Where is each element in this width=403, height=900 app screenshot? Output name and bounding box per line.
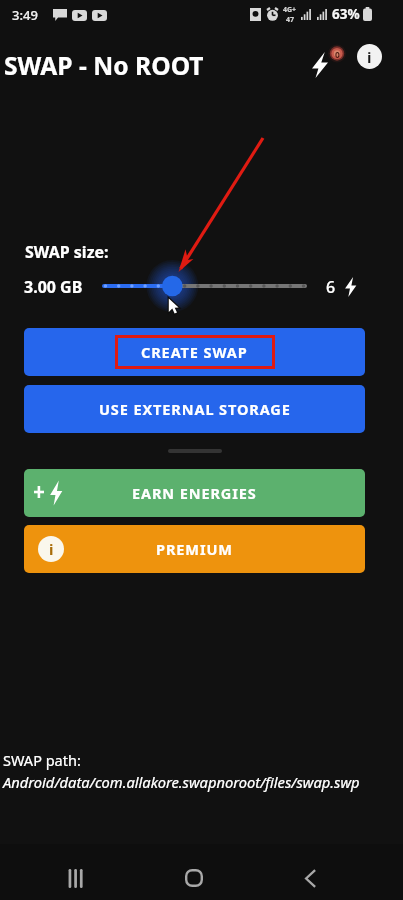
button[interactable]: Recents — [52, 854, 100, 900]
button[interactable]: Home — [170, 854, 218, 900]
button[interactable]: EARN ENERGIES — [24, 469, 365, 517]
staticText: Android/data/com.allakore.swapnoroot/fil… — [3, 772, 360, 792]
staticText: 3.00 GB — [24, 276, 83, 298]
staticText: CREATE SWAP — [141, 342, 248, 362]
staticText: 63% — [332, 5, 360, 23]
staticText: i — [367, 47, 372, 67]
staticText: 3:49 — [12, 6, 38, 24]
staticText: i — [49, 539, 54, 559]
staticText: 6 — [326, 276, 336, 298]
staticText: USE EXTERNAL STORAGE — [99, 399, 291, 419]
button[interactable]: CREATE SWAP — [24, 328, 365, 376]
staticText: PREMIUM — [156, 539, 233, 559]
staticText: 4G+ — [283, 5, 297, 15]
button[interactable]: Info — [347, 34, 391, 78]
button[interactable]: Back — [286, 854, 334, 900]
staticText: SWAP path: — [3, 750, 81, 770]
staticText: EARN ENERGIES — [132, 483, 257, 503]
staticText: SWAP size: — [25, 241, 109, 263]
button[interactable]: Energies — [302, 34, 346, 78]
button[interactable]: PREMIUM — [24, 525, 365, 573]
staticText: 0 — [335, 49, 340, 61]
staticText: SWAP - No ROOT — [4, 49, 204, 83]
staticText: 47 — [286, 15, 295, 25]
button[interactable]: USE EXTERNAL STORAGE — [24, 385, 365, 433]
